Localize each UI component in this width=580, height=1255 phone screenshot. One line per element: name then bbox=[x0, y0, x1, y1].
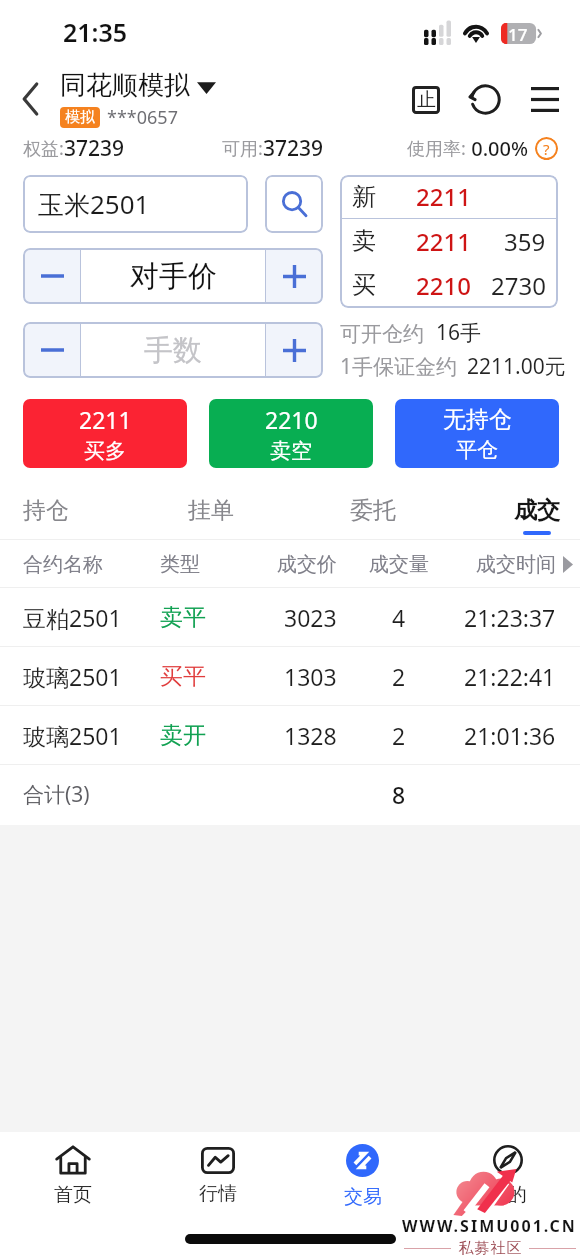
staticText: 21:01:36 bbox=[464, 720, 556, 751]
button[interactable]: 我的 bbox=[435, 1132, 580, 1220]
button[interactable]: 玻璃2501 bbox=[0, 647, 580, 706]
staticText: ***0657 bbox=[107, 105, 178, 130]
staticText: 成交价 bbox=[277, 552, 337, 577]
staticText: 2211.00元 bbox=[467, 352, 566, 381]
button[interactable]: 无持仓 bbox=[395, 399, 559, 468]
button[interactable]: Menu bbox=[522, 77, 567, 122]
staticText: 21:22:41 bbox=[464, 661, 556, 692]
button[interactable]: 委托 bbox=[348, 468, 398, 540]
staticText: 买多 bbox=[84, 438, 126, 464]
staticText: 可用: bbox=[222, 136, 263, 161]
button[interactable]: Increase bbox=[265, 322, 323, 378]
staticText: 成交时间 bbox=[476, 552, 556, 577]
button[interactable]: 玻璃2501 bbox=[0, 706, 580, 765]
button[interactable]: 成交 bbox=[512, 468, 562, 540]
staticText: 2211 bbox=[416, 180, 471, 213]
staticText: 2210 bbox=[265, 404, 318, 435]
staticText: 卖 bbox=[352, 226, 376, 256]
button[interactable]: 2210 bbox=[209, 399, 373, 468]
button[interactable]: 同花顺模拟 bbox=[60, 69, 216, 102]
staticText: 玉米2501 bbox=[38, 186, 150, 222]
staticText: 买平 bbox=[160, 662, 206, 691]
button[interactable]: 玉米2501 bbox=[23, 175, 248, 233]
staticText: 可开仓约 bbox=[340, 321, 424, 347]
staticText: 新 bbox=[352, 182, 376, 212]
staticText: 首页 bbox=[54, 1183, 92, 1207]
staticText: 我的 bbox=[489, 1183, 527, 1207]
staticText: 8 bbox=[392, 779, 406, 810]
button[interactable]: 行情 bbox=[145, 1132, 290, 1220]
button[interactable]: Back bbox=[8, 76, 54, 122]
staticText: 0.00% bbox=[466, 135, 528, 162]
staticText: 2211 bbox=[416, 225, 471, 258]
staticText: 平仓 bbox=[456, 437, 498, 463]
staticText: ? bbox=[543, 139, 550, 159]
staticText: 合约名称 bbox=[23, 552, 103, 577]
button[interactable]: 交易 bbox=[290, 1132, 435, 1220]
button[interactable]: Search bbox=[265, 175, 323, 233]
button[interactable]: 止盈止损 bbox=[403, 77, 448, 122]
staticText: 私募社区 bbox=[458, 1239, 522, 1255]
staticText: 权益: bbox=[23, 136, 64, 161]
staticText: 成交量 bbox=[369, 552, 429, 577]
staticText: 2210 bbox=[416, 269, 471, 302]
staticText: 无持仓 bbox=[443, 405, 512, 434]
button[interactable]: Help bbox=[535, 137, 558, 160]
staticText: 1328 bbox=[284, 720, 337, 751]
staticText: 成交 bbox=[514, 496, 560, 525]
button[interactable]: Increase bbox=[265, 248, 323, 304]
button[interactable]: 手数 bbox=[81, 322, 265, 378]
button[interactable]: 对手价 bbox=[81, 248, 265, 304]
staticText: 2 bbox=[392, 720, 406, 751]
staticText: 同花顺模拟 bbox=[60, 69, 190, 102]
staticText: 买 bbox=[352, 270, 376, 300]
staticText: 类型 bbox=[160, 552, 200, 577]
staticText: 行情 bbox=[199, 1182, 237, 1206]
staticText: 1303 bbox=[284, 661, 337, 692]
staticText: 21:23:37 bbox=[464, 602, 556, 633]
staticText: 卖平 bbox=[160, 603, 206, 632]
staticText: 合计(3) bbox=[23, 780, 90, 809]
button[interactable]: 2211 bbox=[23, 399, 187, 468]
staticText: 2730 bbox=[491, 269, 546, 302]
button[interactable]: 豆粕2501 bbox=[0, 588, 580, 647]
staticText: 对手价 bbox=[130, 258, 217, 295]
staticText: 1手保证金约 bbox=[340, 352, 458, 381]
staticText: 21:35 bbox=[63, 15, 128, 49]
staticText: 止 bbox=[417, 88, 436, 112]
staticText: 玻璃2501 bbox=[23, 661, 122, 692]
staticText: 委托 bbox=[350, 496, 396, 525]
staticText: 2 bbox=[392, 661, 406, 692]
staticText: 16手 bbox=[436, 318, 482, 347]
staticText: 37239 bbox=[263, 134, 324, 163]
staticText: 3023 bbox=[284, 602, 337, 633]
button[interactable]: Decrease bbox=[23, 248, 81, 304]
button[interactable]: 首页 bbox=[0, 1132, 145, 1220]
staticText: 使用率: bbox=[407, 136, 466, 161]
staticText: 17 bbox=[508, 23, 528, 44]
staticText: 2211 bbox=[79, 404, 132, 435]
staticText: 豆粕2501 bbox=[23, 602, 122, 633]
staticText: 37239 bbox=[64, 134, 125, 163]
staticText: 卖开 bbox=[160, 721, 206, 750]
staticText: 4 bbox=[392, 602, 406, 633]
staticText: 交易 bbox=[344, 1185, 382, 1209]
staticText: WWW.SIMU001.CN bbox=[402, 1215, 577, 1237]
staticText: 挂单 bbox=[188, 496, 234, 525]
button[interactable]: Decrease bbox=[23, 322, 81, 378]
button[interactable]: 持仓 bbox=[21, 468, 71, 540]
staticText: 玻璃2501 bbox=[23, 720, 122, 751]
staticText: 模拟 bbox=[65, 108, 95, 127]
staticText: 手数 bbox=[144, 332, 202, 369]
staticText: 持仓 bbox=[23, 496, 69, 525]
button[interactable]: 挂单 bbox=[186, 468, 236, 540]
staticText: 卖空 bbox=[270, 438, 312, 464]
staticText: 359 bbox=[504, 225, 546, 258]
button[interactable]: Refresh bbox=[463, 77, 508, 122]
